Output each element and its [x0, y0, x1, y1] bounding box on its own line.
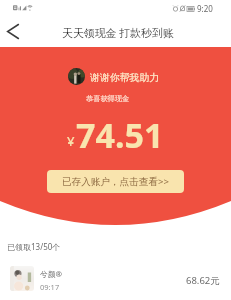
staticText: 74.51	[76, 112, 164, 158]
staticText: 谢谢你帮我助力	[90, 71, 160, 83]
staticText: 9:20	[197, 3, 213, 14]
staticText: 68.62元	[186, 274, 220, 287]
button[interactable]: Back	[1, 17, 25, 41]
button[interactable]: 兮颜®	[0, 261, 231, 300]
staticText: 恭喜获得现金	[86, 94, 130, 103]
staticText: 已领取13/50个	[7, 241, 61, 252]
button[interactable]: 已存入账户，点击查看>>	[47, 170, 184, 193]
staticText: 已存入账户，点击查看>>	[62, 175, 169, 188]
staticText: 兮颜®	[40, 269, 63, 280]
staticText: ¥	[67, 132, 75, 150]
staticText: 09:17	[40, 282, 60, 292]
staticText: 天天领现金 打款秒到账	[62, 25, 174, 40]
